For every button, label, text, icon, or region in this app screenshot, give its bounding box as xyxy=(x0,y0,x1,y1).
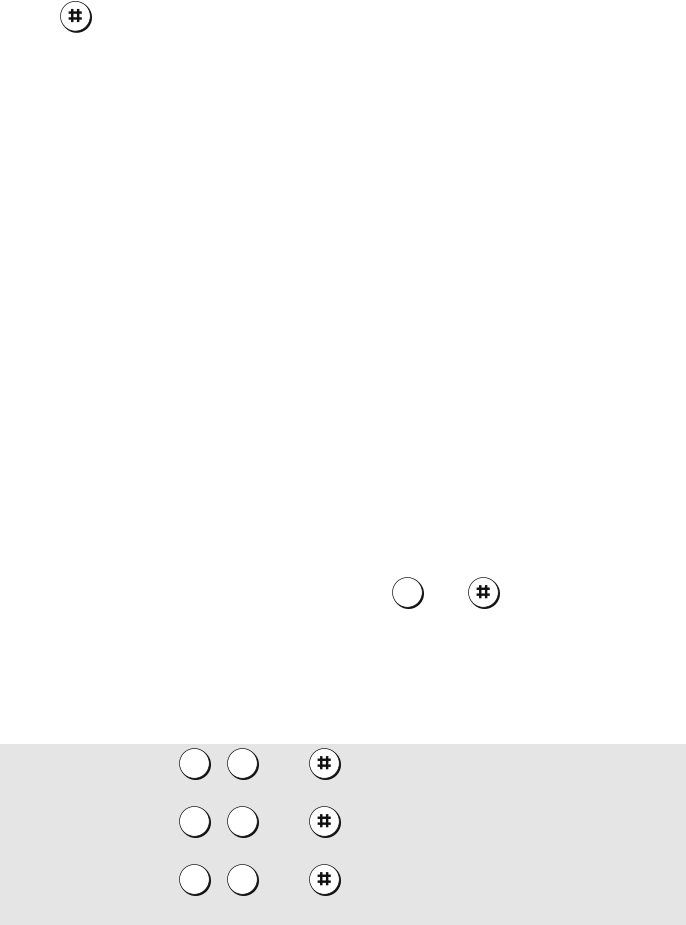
button[interactable]: All channels xyxy=(0,864,686,922)
staticText: Recently visited xyxy=(20,750,185,778)
button[interactable]: Add reaction xyxy=(392,577,424,609)
button[interactable]: Recently visited xyxy=(0,748,686,806)
button[interactable]: design-review xyxy=(0,0,272,34)
button[interactable]: Starred xyxy=(0,806,686,864)
button[interactable]: Open linked channel xyxy=(468,577,500,609)
